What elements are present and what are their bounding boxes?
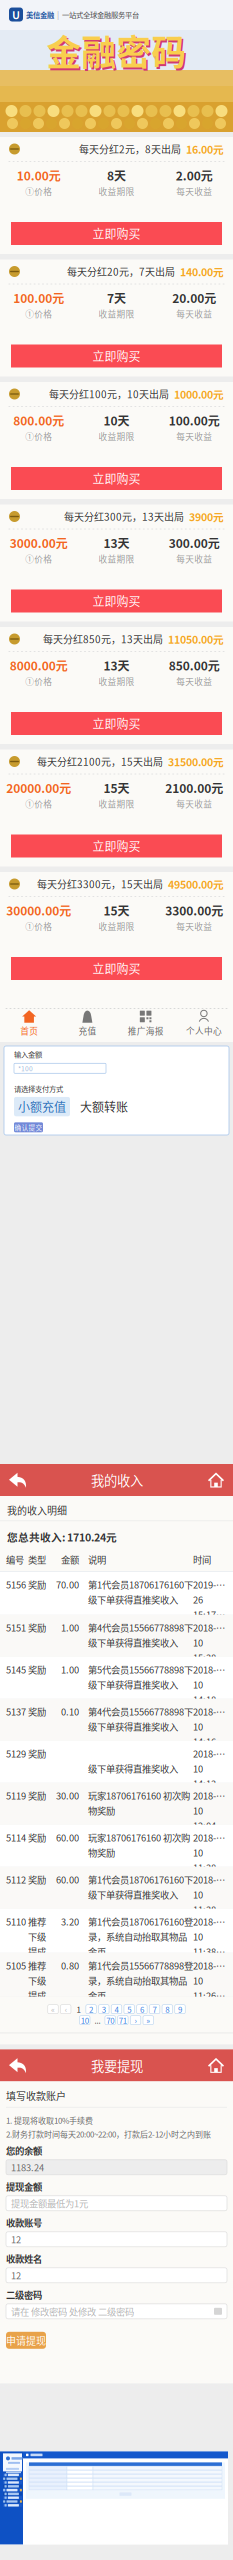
button[interactable]: 立即购买	[11, 957, 222, 980]
button[interactable]: 9	[175, 2005, 185, 2014]
staticText: 20000.00元	[6, 779, 71, 796]
staticText: 物奖励	[88, 1846, 115, 1859]
staticText: 每天收益	[176, 552, 212, 565]
button[interactable]: 2	[86, 2005, 96, 2014]
button[interactable]: 4	[111, 2005, 122, 2014]
button[interactable]: 7	[149, 2005, 160, 2014]
staticText: 5137	[6, 1705, 26, 1718]
staticText: 2.财务打款时间每天20:00~22:00，打款后2-12小时之内到账	[6, 2128, 211, 2140]
staticText: 100.00元	[169, 411, 220, 429]
staticText: 2019-03-	[193, 1578, 227, 1591]
button[interactable]: 大额转账	[76, 1097, 132, 1116]
button[interactable]: «	[48, 2005, 58, 2014]
staticText: 10	[81, 2014, 89, 2026]
staticText: 金币	[88, 1945, 106, 1958]
button[interactable]: 70	[105, 2016, 115, 2025]
button[interactable]: Back	[0, 1464, 38, 1496]
staticText: 收益期限	[98, 307, 134, 320]
staticText: 提现金额	[6, 2180, 42, 2193]
staticText: 8天	[107, 166, 126, 184]
staticText: 填写收款账户	[6, 2088, 66, 2103]
staticText: 2018-01-	[193, 1705, 227, 1718]
staticText: 物奖励	[88, 1804, 115, 1817]
staticText: 每天分红2100元，15天出局	[37, 754, 163, 769]
staticText: 2018-01-	[193, 1873, 227, 1886]
staticText: 每天收益	[176, 307, 212, 320]
button[interactable]: Back	[0, 2049, 38, 2081]
staticText: 2100.00元	[165, 779, 223, 796]
staticText: 15:17:08	[193, 1608, 227, 1621]
staticText: 收款姓名	[6, 2252, 42, 2265]
button[interactable]: 8	[162, 2005, 173, 2014]
staticText: 1.00	[61, 1663, 79, 1676]
staticText: 奖励	[28, 1705, 46, 1718]
staticText: 收款账号	[6, 2216, 42, 2229]
staticText: 第1代会员18706176160下	[88, 1873, 193, 1886]
staticText: 级下单获得直推奖收入	[88, 1636, 178, 1649]
staticText: 每天收益	[176, 920, 212, 932]
button[interactable]: 立即购买	[11, 222, 222, 245]
staticText: 级下单获得直推奖收入	[88, 1678, 178, 1691]
staticText: 100.00元	[13, 289, 64, 306]
staticText: 14:18:20	[193, 1693, 227, 1706]
button[interactable]: 立即购买	[11, 467, 222, 490]
staticText: 金融密码	[46, 25, 186, 76]
staticText: 12	[11, 2232, 21, 2246]
staticText: 第1代会员18706176160下	[88, 1578, 193, 1591]
staticText: 奖励	[28, 1663, 46, 1676]
button[interactable]: 确认提交	[14, 1122, 43, 1132]
button[interactable]: ...	[92, 2016, 103, 2025]
staticText: 2018-01-	[193, 1663, 227, 1676]
button[interactable]: 推广海报	[116, 1009, 175, 1038]
staticText: 10天	[103, 411, 129, 429]
staticText: 金融密码	[48, 27, 188, 78]
staticText: ①价格	[25, 307, 52, 320]
staticText: 11:26:33	[193, 1989, 227, 2002]
button[interactable]: 6	[137, 2005, 147, 2014]
staticText: 1183.24	[11, 2160, 44, 2174]
button[interactable]: Home	[196, 2049, 233, 2081]
button[interactable]: 71	[118, 2016, 128, 2025]
staticText: |	[57, 9, 59, 20]
button[interactable]: »	[143, 2016, 153, 2025]
staticText: 说明	[88, 1553, 106, 1566]
staticText: 16.00元	[186, 141, 224, 157]
button[interactable]: ‹	[60, 2005, 71, 2014]
button[interactable]: 5	[124, 2005, 134, 2014]
staticText: 第1代会员15566778898登	[88, 1959, 193, 1972]
staticText: 15:38:55	[193, 1651, 227, 1664]
staticText: 8000.00元	[10, 656, 68, 674]
staticText: 第1代会员18706176160登	[88, 1915, 193, 1928]
staticText: 立即购买	[92, 960, 140, 977]
staticText: 推荐	[28, 1915, 46, 1928]
button[interactable]: 立即购买	[11, 712, 222, 735]
button[interactable]: 充值	[58, 1009, 116, 1038]
staticText: 14:13:13	[193, 1777, 227, 1790]
button[interactable]: 立即购买	[11, 344, 222, 367]
button[interactable]: 1	[73, 2005, 84, 2014]
staticText: 5105	[6, 1959, 26, 1972]
staticText: 30000.00元	[6, 901, 71, 919]
staticText: 800.00元	[13, 411, 64, 429]
staticText: 60.00	[56, 1831, 79, 1844]
staticText: 小额充值	[18, 1098, 66, 1115]
button[interactable]: 立即购买	[11, 834, 222, 857]
button[interactable]: 3	[98, 2005, 109, 2014]
button[interactable]: 个人中心	[175, 1009, 233, 1038]
button[interactable]: 申请提现	[6, 2332, 46, 2349]
button[interactable]: 立即购买	[11, 589, 222, 612]
button[interactable]: 10	[79, 2016, 90, 2025]
button[interactable]: 小额充值	[14, 1097, 70, 1116]
button[interactable]: Home	[196, 1464, 233, 1496]
staticText: ①价格	[25, 430, 52, 442]
staticText: 您的余额	[6, 2144, 42, 2157]
staticText: 4	[114, 2003, 118, 2015]
staticText: «	[51, 2003, 55, 2015]
button[interactable]: 首页	[0, 1009, 58, 1038]
staticText: 5129	[6, 1747, 26, 1760]
staticText: 级下单获得直推奖收入	[88, 1720, 178, 1733]
staticText: 奖励	[28, 1873, 46, 1886]
staticText: 10	[193, 1636, 203, 1649]
staticText: 金额	[61, 1553, 79, 1566]
button[interactable]: ›	[130, 2016, 141, 2025]
